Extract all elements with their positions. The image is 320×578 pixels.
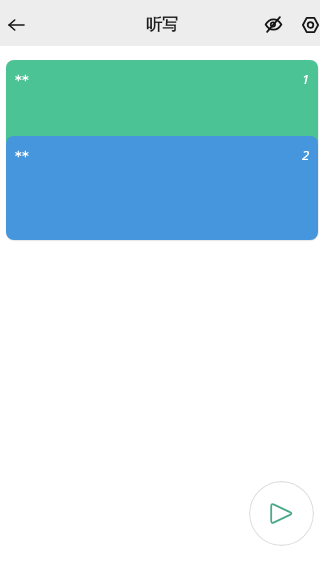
button[interactable]: Play (249, 481, 314, 546)
button[interactable]: Hide answers (255, 3, 292, 46)
button[interactable]: 1 (6, 60, 318, 148)
staticText: 2 (302, 146, 310, 164)
staticText: 听写 (146, 15, 178, 35)
button[interactable]: Settings (292, 3, 320, 46)
button[interactable]: Back (0, 4, 32, 46)
staticText: 1 (302, 70, 310, 88)
button[interactable]: 2 (6, 136, 318, 240)
